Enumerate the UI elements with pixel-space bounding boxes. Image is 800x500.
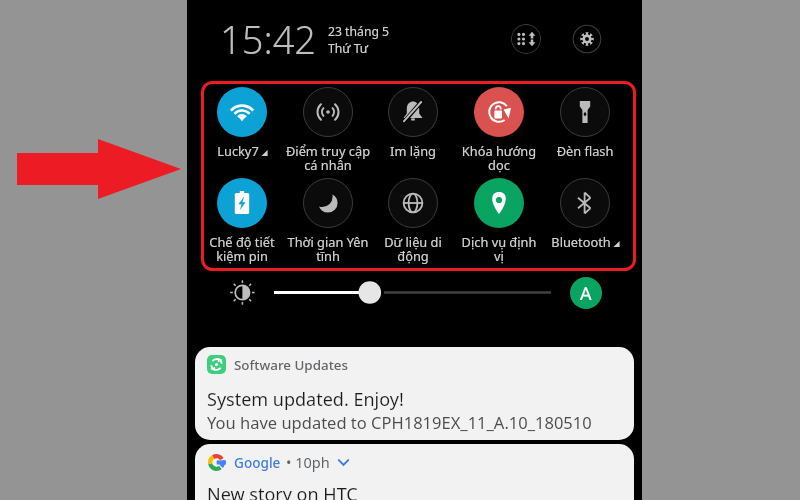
staticText: Software Updates	[234, 356, 348, 374]
button[interactable]: Bluetooth	[542, 178, 628, 250]
button[interactable]: Software Updates	[195, 347, 634, 440]
button[interactable]: Điểm truy cập cá nhân	[285, 87, 371, 174]
button[interactable]: Đèn flash	[542, 87, 628, 159]
staticText: Bluetooth	[551, 233, 611, 250]
staticText: Dữ liệu di động	[370, 233, 456, 265]
staticText: Lucky7	[217, 142, 259, 159]
staticText: Chế độ tiết kiệm pin	[199, 233, 285, 265]
button[interactable]: Lucky7	[199, 87, 285, 159]
staticText: 23 tháng 5	[328, 23, 390, 40]
button[interactable]: Edit tiles	[511, 24, 541, 54]
staticText: Dịch vụ định vị	[456, 233, 542, 265]
staticText: Thời gian Yên tĩnh	[285, 233, 371, 265]
button[interactable]: Thời gian Yên tĩnh	[285, 178, 371, 265]
staticText: Điểm truy cập cá nhân	[285, 142, 371, 174]
button[interactable]: Google	[195, 444, 634, 500]
button[interactable]: Auto brightness	[570, 277, 602, 309]
staticText: New story on HTC	[207, 482, 358, 500]
staticText: Im lặng	[370, 142, 456, 159]
staticText: You have updated to CPH1819EX_11_A.10_18…	[207, 411, 592, 433]
staticText: • 10ph	[286, 452, 330, 472]
button[interactable]: Dữ liệu di động	[370, 178, 456, 265]
staticText: Google	[234, 453, 281, 472]
button[interactable]: Khóa hướng dọc	[456, 87, 542, 174]
staticText: Đèn flash	[542, 142, 628, 159]
button[interactable]: Dịch vụ định vị	[456, 178, 542, 265]
staticText: A	[580, 281, 592, 306]
button[interactable]: Im lặng	[370, 87, 456, 159]
staticText: Khóa hướng dọc	[456, 142, 542, 174]
button[interactable]: Chế độ tiết kiệm pin	[199, 178, 285, 265]
staticText: System updated. Enjoy!	[207, 387, 404, 412]
staticText: Thứ Tư	[328, 40, 369, 57]
button[interactable]: Settings	[572, 24, 602, 54]
staticText: 15:42	[220, 13, 317, 65]
